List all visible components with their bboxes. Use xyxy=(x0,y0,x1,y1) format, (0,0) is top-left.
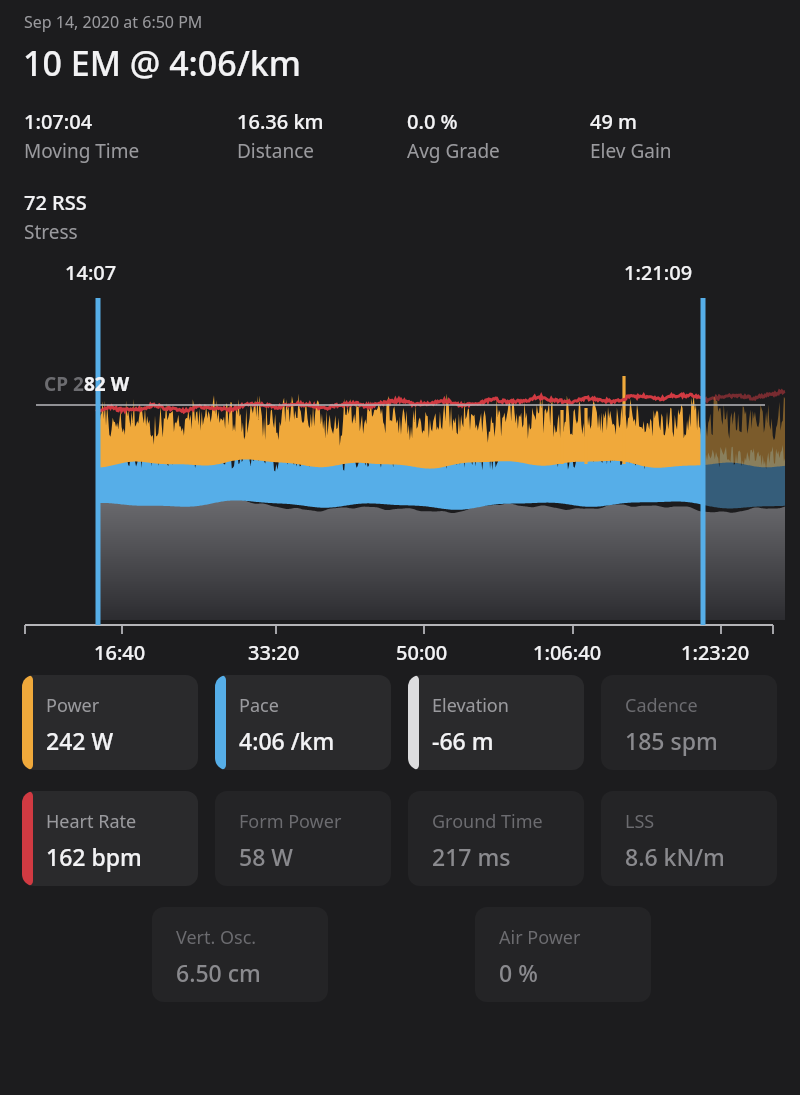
staticText: Elev Gain xyxy=(590,138,672,164)
button[interactable]: Pace xyxy=(215,675,391,770)
staticText: Ground Time xyxy=(432,809,543,834)
staticText: Vert. Osc. xyxy=(176,925,257,950)
staticText: Distance xyxy=(237,138,314,164)
staticText: 162 bpm xyxy=(46,841,142,872)
staticText: 242 W xyxy=(46,725,114,756)
staticText: Heart Rate xyxy=(46,809,137,834)
button[interactable]: Form Power xyxy=(215,791,391,886)
staticText: LSS xyxy=(625,809,655,834)
staticText: Pace xyxy=(239,693,279,718)
staticText: 1:06:40 xyxy=(533,639,602,666)
staticText: 185 spm xyxy=(625,725,718,756)
button[interactable]: Power xyxy=(22,675,198,770)
staticText: Air Power xyxy=(499,925,581,950)
staticText: 16:40 xyxy=(94,639,146,666)
staticText: Sep 14, 2020 at 6:50 PM xyxy=(24,11,203,33)
staticText: 0 % xyxy=(499,957,538,988)
staticText: 10 EM @ 4:06/km xyxy=(23,40,302,86)
staticText: 1:23:20 xyxy=(681,639,750,666)
staticText: 6.50 cm xyxy=(176,957,261,988)
button[interactable]: LSS xyxy=(601,791,777,886)
staticText: 33:20 xyxy=(248,639,300,666)
staticText: 58 W xyxy=(239,841,293,872)
staticText: Moving Time xyxy=(24,138,140,164)
staticText: 49 m xyxy=(590,108,638,135)
button[interactable]: Air Power xyxy=(475,907,651,1002)
button[interactable]: Heart Rate xyxy=(22,791,198,886)
staticText: -66 m xyxy=(432,725,494,756)
staticText: Avg Grade xyxy=(407,138,500,164)
staticText: 72 RSS xyxy=(24,189,87,216)
button[interactable]: Ground Time xyxy=(408,791,584,886)
staticText: 8.6 kN/m xyxy=(625,841,725,872)
staticText: 82 W xyxy=(84,371,130,397)
staticText: Power xyxy=(46,693,100,718)
staticText: 14:07 xyxy=(65,259,117,286)
staticText: 217 ms xyxy=(432,841,511,872)
staticText: Stress xyxy=(24,219,78,245)
staticText: Elevation xyxy=(432,693,509,718)
staticText: CP 2 xyxy=(44,371,84,397)
button[interactable]: Vert. Osc. xyxy=(152,907,328,1002)
staticText: 1:21:09 xyxy=(624,259,693,286)
staticText: 16.36 km xyxy=(237,108,324,135)
staticText: 4:06 /km xyxy=(239,725,335,756)
button[interactable]: Cadence xyxy=(601,675,777,770)
staticText: Cadence xyxy=(625,693,698,718)
button[interactable]: Elevation xyxy=(408,675,584,770)
staticText: Form Power xyxy=(239,809,342,834)
staticText: 1:07:04 xyxy=(24,108,93,135)
staticText: 50:00 xyxy=(396,639,448,666)
staticText: 0.0 % xyxy=(407,108,458,135)
